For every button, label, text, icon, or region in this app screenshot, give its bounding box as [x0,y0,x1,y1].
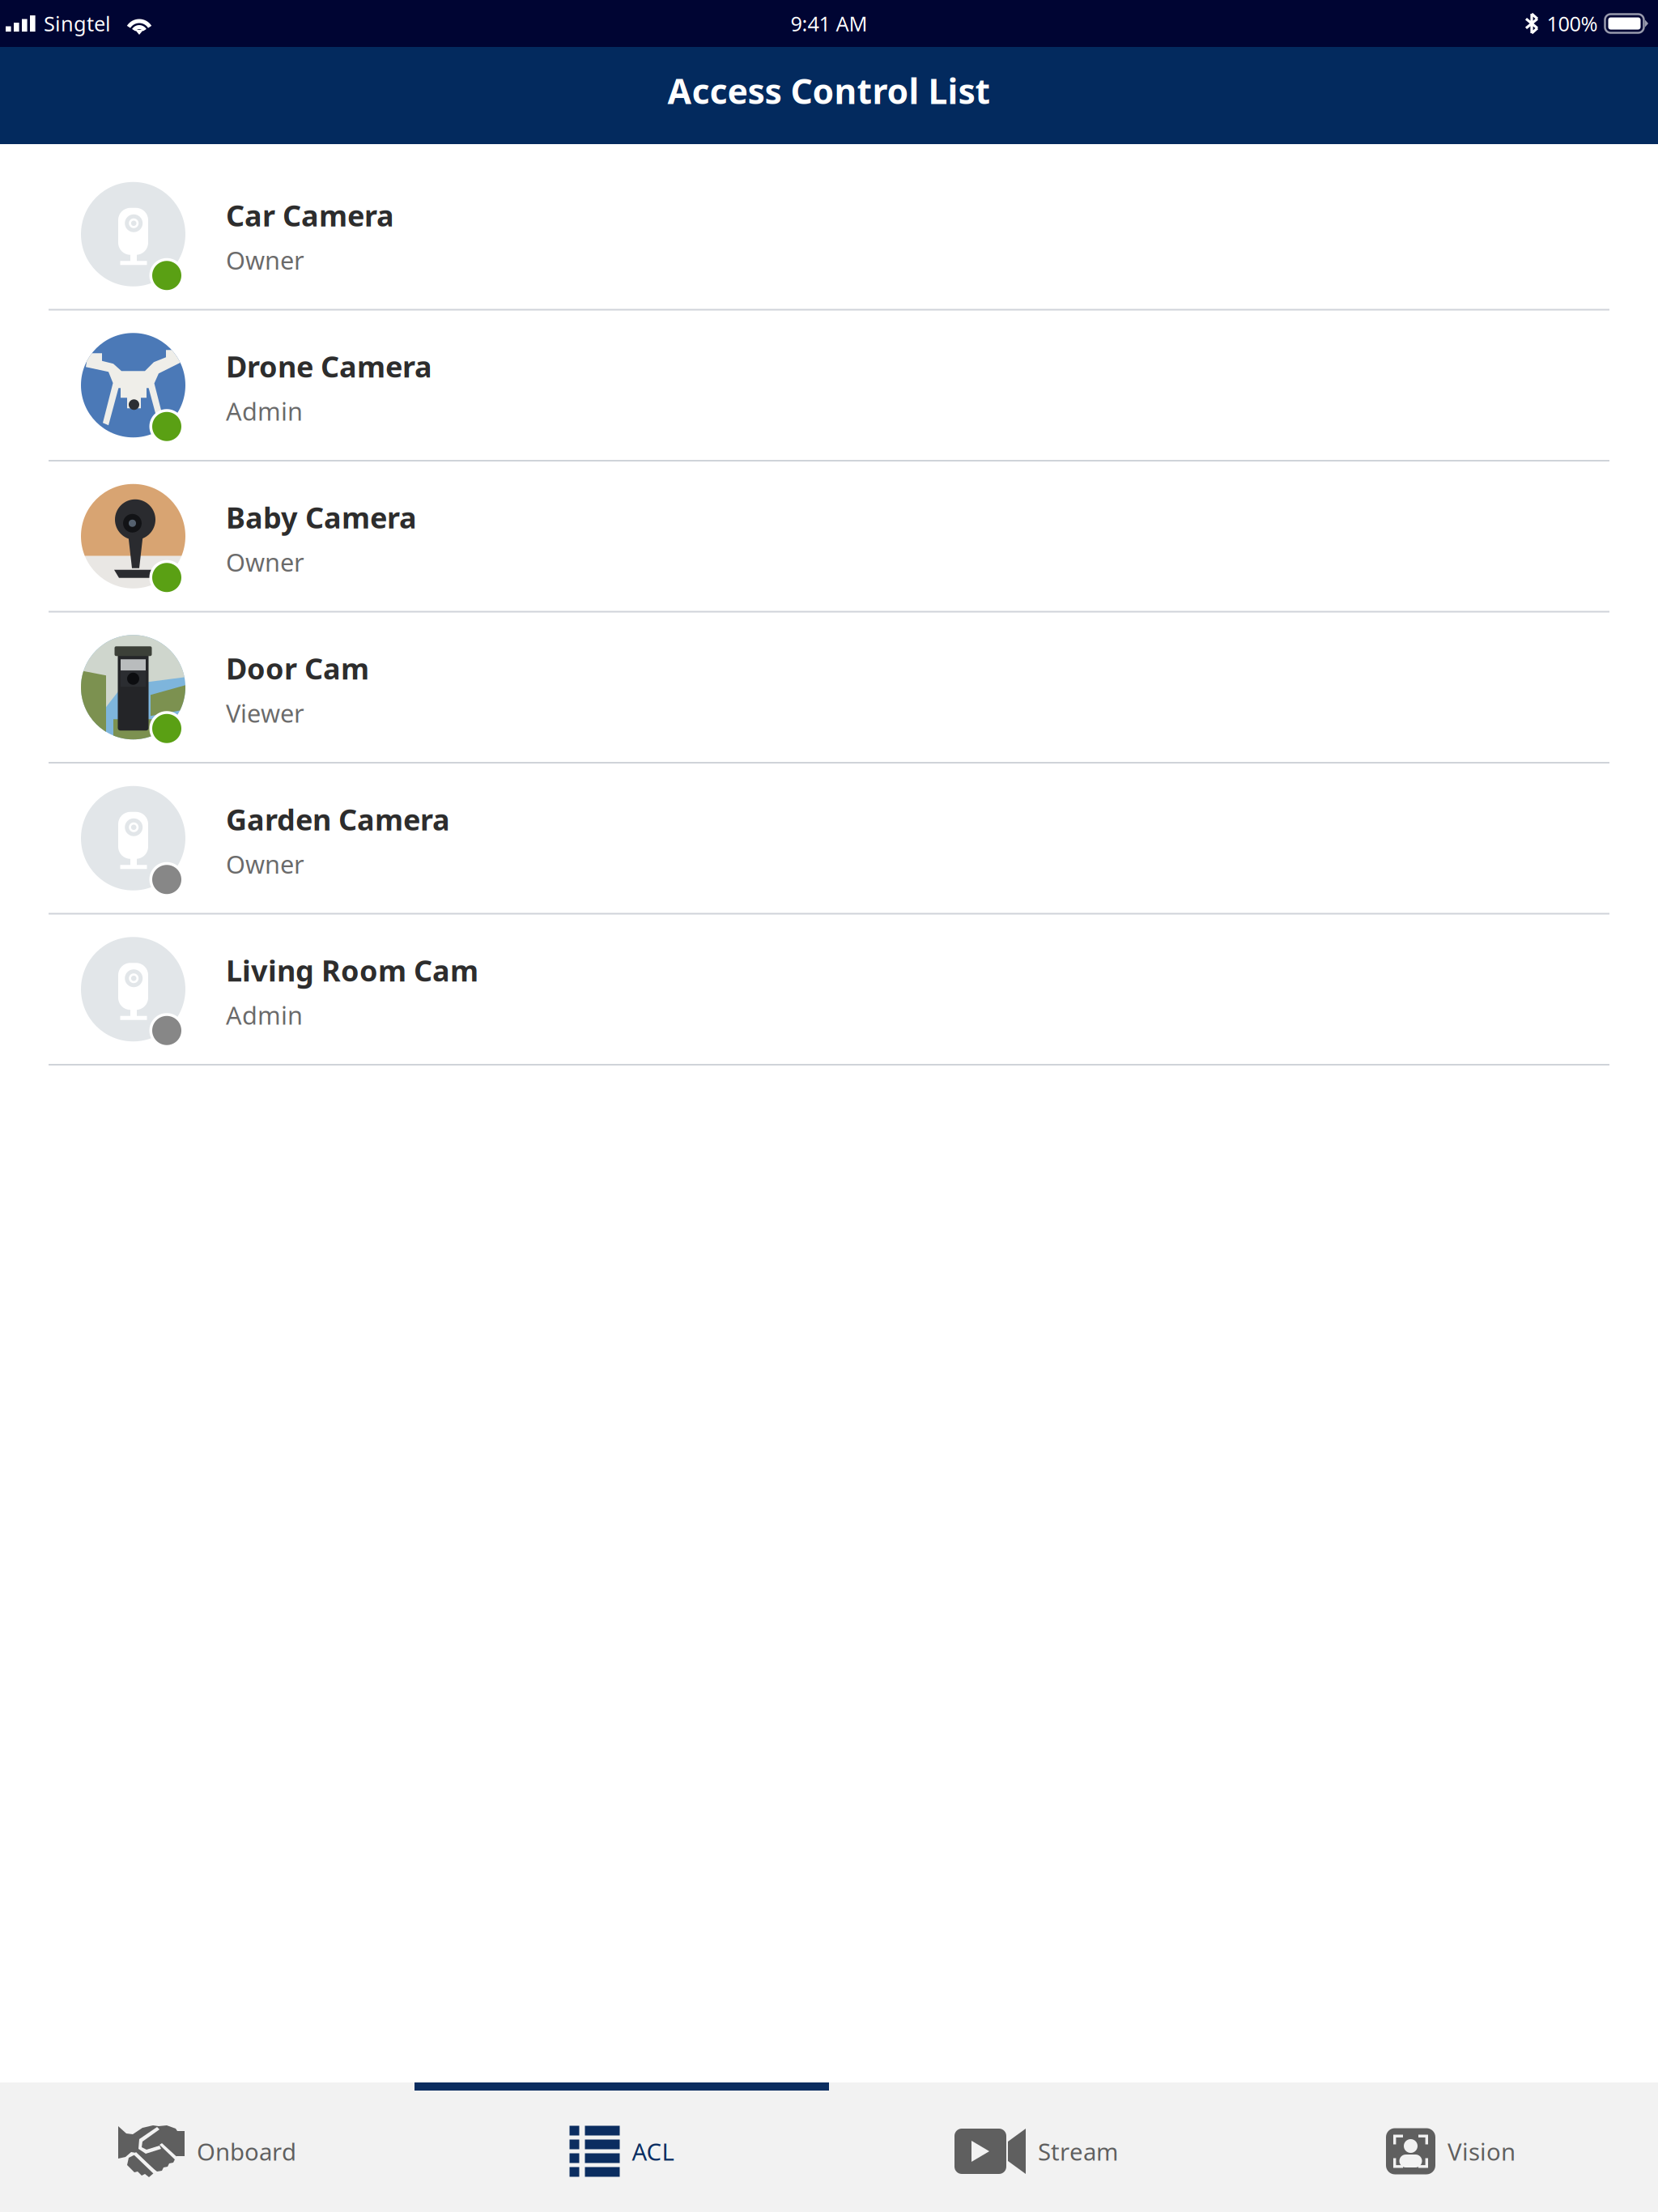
staticText: Singtel [44,10,111,37]
button[interactable]: Stream [829,2082,1243,2212]
staticText: Owner [226,848,304,881]
staticText: Onboard [197,2135,296,2167]
staticText: ACL [632,2135,674,2167]
button[interactable]: Baby Camera [0,462,1658,613]
staticText: Admin [226,999,303,1032]
staticText: Living Room Cam [226,951,478,990]
staticText: Door Cam [226,649,369,688]
button[interactable]: Door Cam [0,613,1658,764]
staticText: Viewer [226,697,304,730]
staticText: Vision [1448,2135,1516,2167]
button[interactable]: Drone Camera [0,311,1658,462]
staticText: Stream [1038,2135,1118,2167]
staticText: Car Camera [226,196,394,235]
staticText: Owner [226,244,304,276]
button[interactable]: Garden Camera [0,764,1658,915]
staticText: Access Control List [667,68,991,114]
staticText: 100% [1547,10,1598,37]
button[interactable]: Onboard [0,2082,414,2212]
button[interactable]: Vision [1243,2082,1658,2212]
button[interactable]: Living Room Cam [0,915,1658,1066]
button[interactable]: Car Camera [0,160,1658,311]
staticText: Baby Camera [226,498,417,537]
staticText: Owner [226,546,304,579]
staticText: 9:41 AM [791,10,867,37]
staticText: Garden Camera [226,800,450,839]
staticText: Admin [226,395,303,428]
button[interactable]: ACL [414,2082,829,2212]
staticText: Drone Camera [226,347,432,386]
